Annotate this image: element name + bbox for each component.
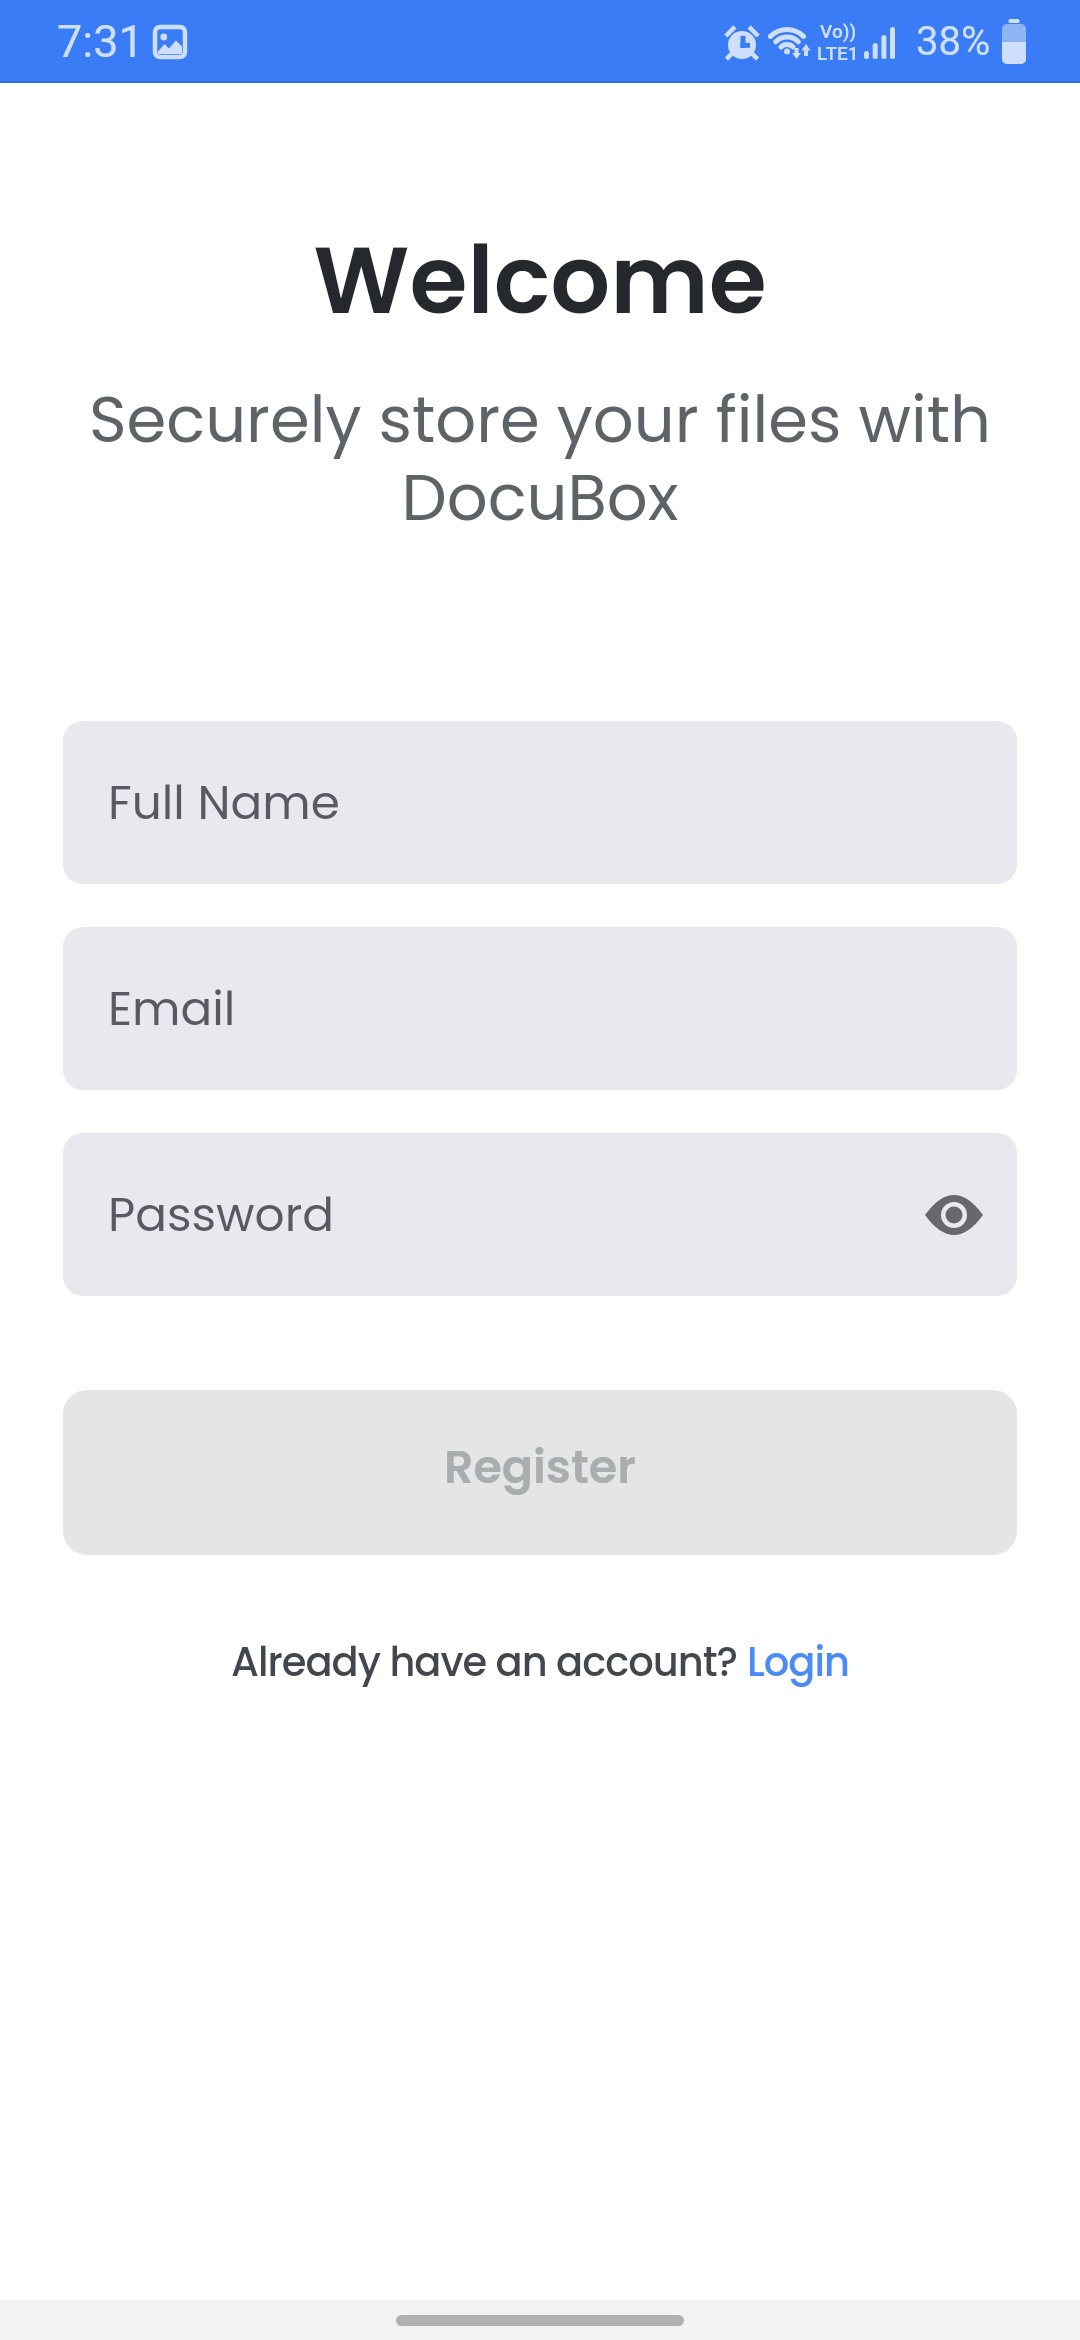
staticText: 7:31 <box>57 15 144 68</box>
staticText: Password <box>108 1182 334 1248</box>
button[interactable]: Email <box>63 927 1017 1090</box>
staticText: Register <box>444 1435 636 1499</box>
button[interactable] <box>915 1184 993 1246</box>
button[interactable]: Register <box>63 1390 1017 1555</box>
staticText: Welcome <box>0 214 1080 346</box>
button[interactable]: Login <box>747 1634 849 1690</box>
staticText: Already have an account? <box>231 1634 747 1690</box>
staticText: Securely store your files with DocuBox <box>0 375 1080 543</box>
staticText: Email <box>108 976 236 1042</box>
staticText: Vo)) <box>820 20 857 42</box>
staticText: 38% <box>916 18 991 65</box>
staticText: LTE1 <box>817 42 859 64</box>
staticText: Full Name <box>108 770 340 836</box>
button[interactable]: Full Name <box>63 721 1017 884</box>
button[interactable]: Password <box>63 1133 1017 1296</box>
